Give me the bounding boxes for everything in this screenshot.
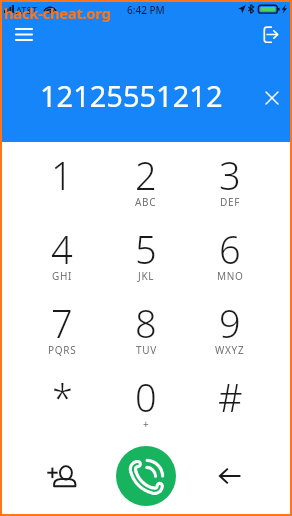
staticText: 9 — [219, 297, 241, 349]
button[interactable]: 0 — [104, 364, 188, 438]
button[interactable]: 8 — [104, 290, 188, 364]
button[interactable]: 2 — [104, 142, 188, 216]
button[interactable]: # — [188, 364, 272, 438]
staticText: 7 — [51, 297, 73, 349]
staticText: JKL — [138, 269, 155, 283]
staticText: 0 — [135, 371, 157, 423]
staticText: MNO — [217, 269, 244, 283]
staticText: PQRS — [48, 343, 77, 357]
button[interactable]: * — [20, 364, 104, 438]
staticText: * — [52, 371, 73, 423]
button[interactable]: 5 — [104, 216, 188, 290]
button[interactable]: Call — [116, 446, 176, 506]
staticText: 6 — [219, 223, 241, 275]
staticText: 6:42 PM — [127, 3, 165, 17]
button[interactable]: Clear — [257, 83, 287, 113]
button[interactable]: 9 — [188, 290, 272, 364]
staticText: + — [143, 417, 150, 431]
button[interactable]: 1 — [20, 142, 104, 216]
staticText: 5 — [135, 223, 157, 275]
button[interactable]: 4 — [20, 216, 104, 290]
button[interactable]: 6 — [188, 216, 272, 290]
staticText: WXYZ — [215, 343, 245, 357]
staticText: # — [218, 371, 243, 423]
staticText: ABC — [135, 195, 157, 209]
staticText: 1 — [51, 149, 73, 201]
button[interactable]: Add contact — [42, 456, 82, 496]
staticText: 2 — [135, 149, 157, 201]
button[interactable]: Log out — [256, 20, 284, 48]
staticText: 12125551212 — [40, 76, 223, 115]
button[interactable]: 3 — [188, 142, 272, 216]
staticText: hack-cheat.org — [4, 3, 111, 23]
staticText: 3 — [219, 149, 241, 201]
staticText: TUV — [136, 343, 157, 357]
staticText: 4 — [51, 223, 73, 275]
staticText: GHI — [52, 269, 73, 283]
button[interactable]: Backspace — [210, 456, 250, 496]
staticText: 8 — [135, 297, 157, 349]
staticText: AT&T — [16, 4, 38, 16]
staticText: DEF — [220, 195, 241, 209]
button[interactable]: 7 — [20, 290, 104, 364]
button[interactable]: Menu — [10, 20, 38, 48]
